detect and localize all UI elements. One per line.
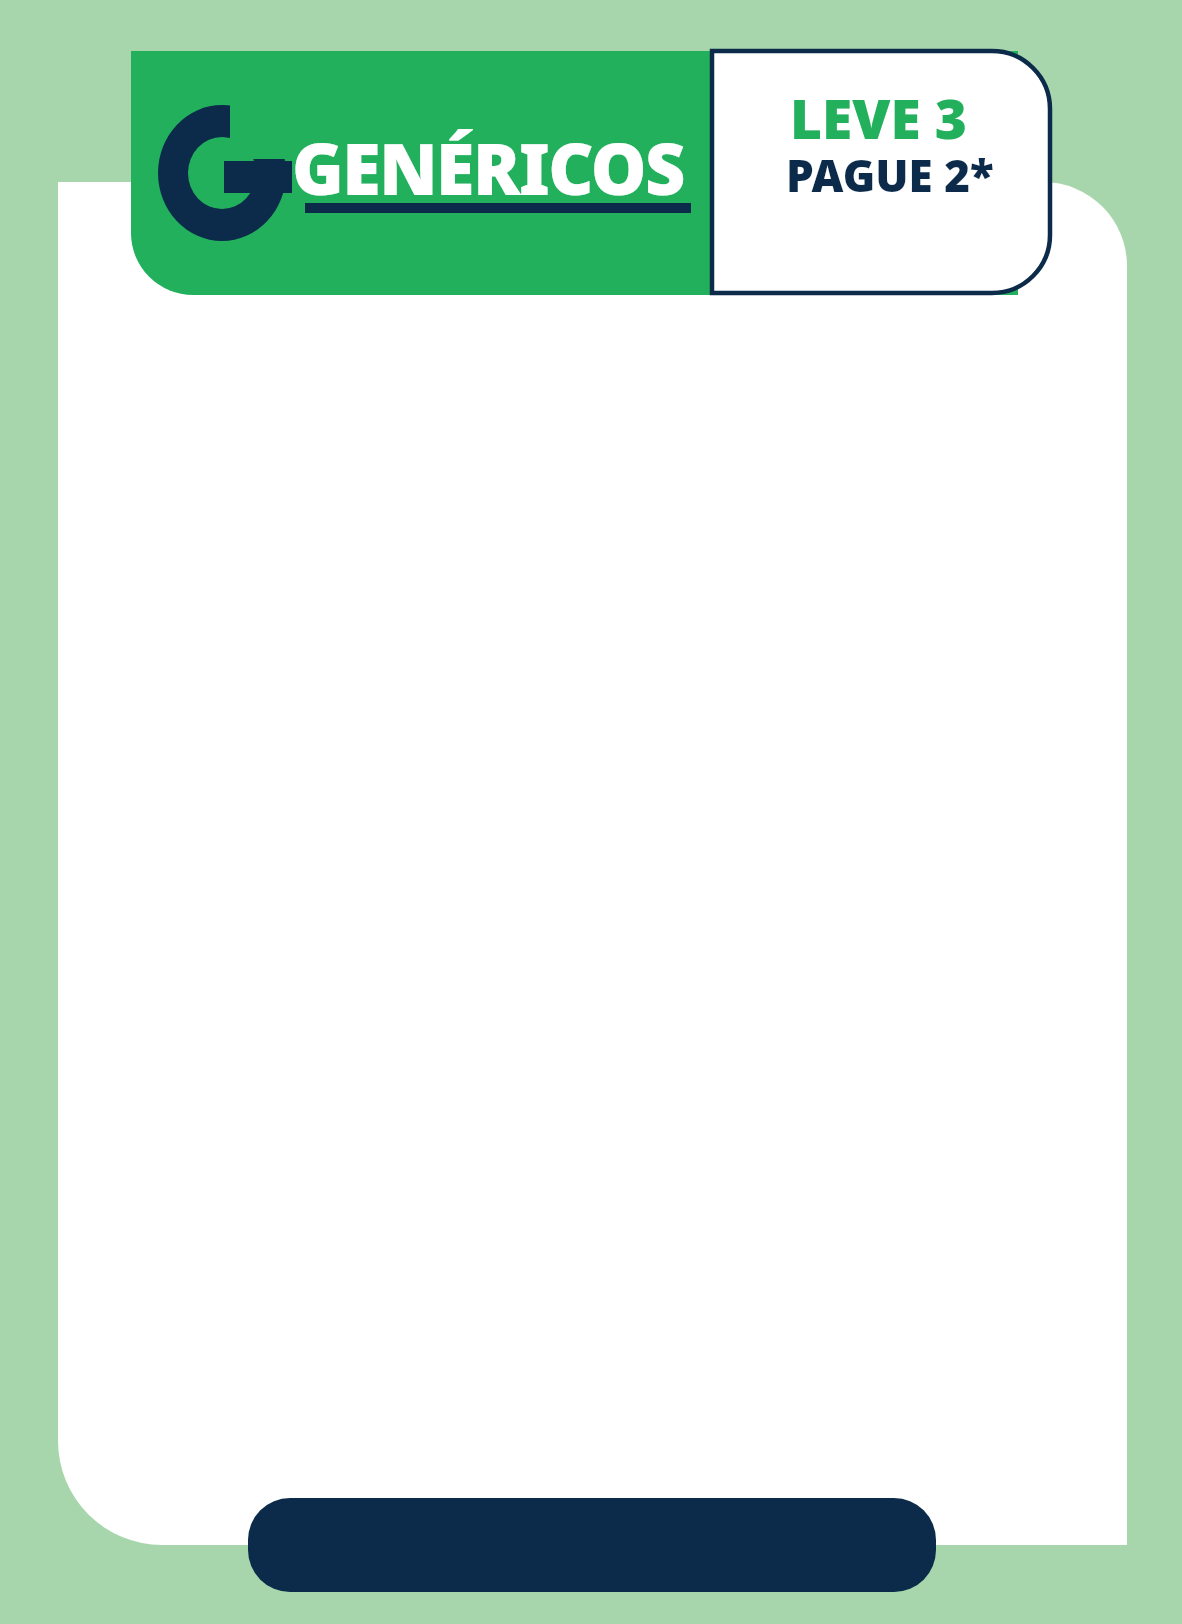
button[interactable]: Genéricos: [131, 51, 712, 295]
button[interactable]: LEVE 3 PAGUE 2 promotion: [712, 51, 1050, 293]
button[interactable]: Continue: [248, 1498, 936, 1592]
